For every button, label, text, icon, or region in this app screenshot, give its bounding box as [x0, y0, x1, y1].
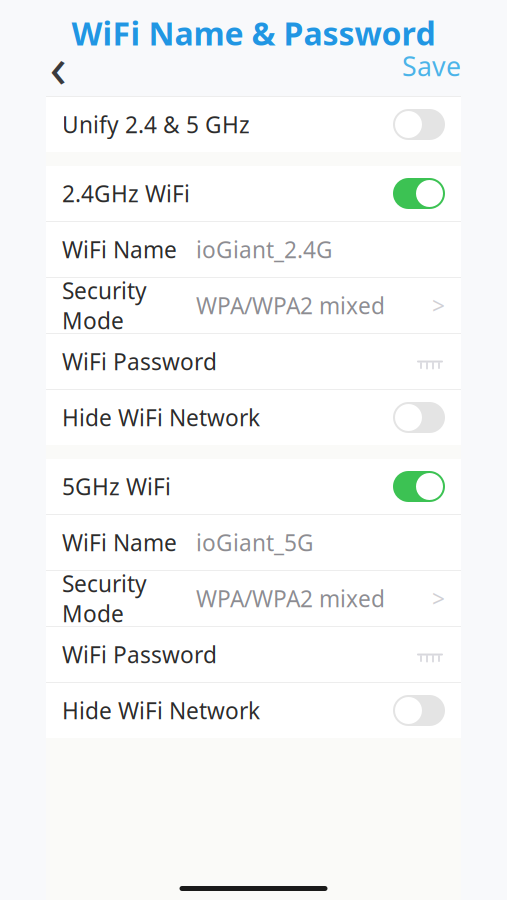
staticText: WiFi Password — [62, 346, 217, 376]
staticText: WPA/WPA2 mixed — [196, 583, 385, 613]
staticText: Security Mode — [62, 275, 147, 336]
button[interactable]: 5GHz WiFi — [46, 459, 461, 514]
button[interactable]: WiFi Name — [46, 515, 461, 570]
button[interactable]: Security Mode — [46, 571, 461, 626]
staticText: Unify 2.4 & 5 GHz — [62, 109, 250, 139]
button[interactable]: 2.4GHz WiFi — [46, 166, 461, 221]
button[interactable]: Hide WiFi Network — [46, 390, 461, 445]
staticText: ‹ — [49, 29, 66, 103]
button[interactable]: Back — [32, 44, 84, 88]
button[interactable]: WiFi Password — [46, 334, 461, 389]
staticText: WiFi Name — [62, 234, 177, 264]
staticText: WPA/WPA2 mixed — [196, 290, 385, 320]
staticText: WiFi Name & Password — [71, 12, 435, 54]
staticText: Hide WiFi Network — [62, 402, 260, 432]
button[interactable]: Hide WiFi Network — [46, 683, 461, 738]
staticText: WiFi Password — [62, 639, 217, 669]
staticText: > — [432, 583, 445, 613]
button[interactable]: WiFi Name — [46, 222, 461, 277]
button[interactable]: Unify 2.4 & 5 GHz — [46, 97, 461, 152]
button[interactable]: WiFi Password — [46, 627, 461, 682]
staticText: ioGiant_2.4G — [196, 234, 333, 264]
staticText: Hide WiFi Network — [62, 695, 260, 725]
staticText: 2.4GHz WiFi — [62, 178, 190, 208]
staticText: Save — [402, 48, 461, 84]
staticText: WiFi Name — [62, 527, 177, 557]
staticText: ioGiant_5G — [196, 527, 314, 557]
button[interactable]: Save — [388, 44, 475, 88]
staticText: 5GHz WiFi — [62, 471, 171, 501]
staticText: Security Mode — [62, 568, 147, 629]
staticText: > — [432, 290, 445, 320]
button[interactable]: Security Mode — [46, 278, 461, 333]
